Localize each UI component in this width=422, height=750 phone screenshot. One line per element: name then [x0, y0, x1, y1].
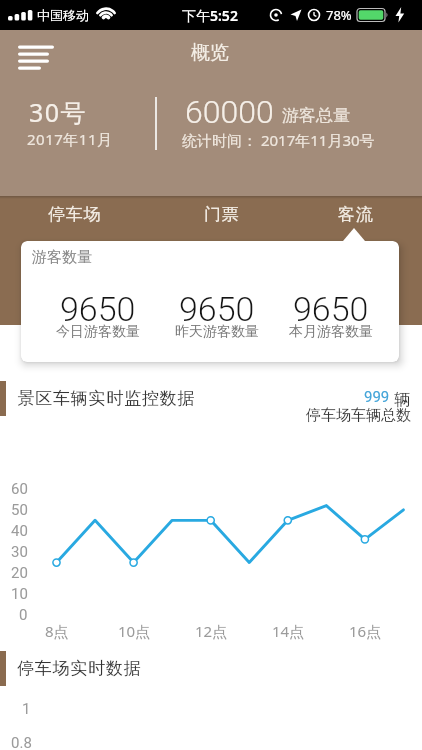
- staticText: 78%: [326, 6, 352, 24]
- staticText: 0: [19, 606, 28, 624]
- button[interactable]: [21, 241, 399, 362]
- staticText: 2017年11月: [27, 129, 113, 149]
- staticText: 9650: [293, 289, 369, 329]
- button[interactable]: 客流: [296, 198, 416, 230]
- staticText: 今日游客数量: [56, 323, 140, 341]
- button[interactable]: [10, 38, 62, 78]
- staticText: 门票: [204, 204, 240, 225]
- staticText: 60000: [185, 93, 274, 131]
- staticText: 9650: [60, 289, 136, 329]
- staticText: 8点: [45, 621, 69, 641]
- staticText: 16点: [349, 621, 382, 641]
- staticText: 客流: [338, 204, 374, 225]
- staticText: 游客总量: [282, 105, 350, 126]
- staticText: 昨天游客数量: [175, 323, 259, 341]
- staticText: 停车场车辆总数: [306, 406, 411, 425]
- staticText: 辆: [390, 388, 411, 408]
- staticText: 9650: [179, 289, 255, 329]
- staticText: 30: [11, 543, 28, 561]
- staticText: 40: [11, 522, 28, 540]
- staticText: 本月游客数量: [289, 323, 373, 341]
- button[interactable]: 停车场: [15, 198, 135, 230]
- staticText: 停车场: [48, 204, 102, 225]
- staticText: 60: [11, 480, 28, 498]
- staticText: 停车场实时数据: [17, 658, 142, 679]
- staticText: 14点: [272, 621, 305, 641]
- staticText: 0.8: [11, 734, 32, 750]
- staticText: 10: [11, 585, 28, 603]
- staticText: 50: [11, 501, 28, 519]
- staticText: 20: [11, 564, 28, 582]
- staticText: 10点: [118, 621, 151, 641]
- staticText: 下午5:52: [182, 6, 238, 25]
- staticText: 1: [22, 700, 31, 718]
- staticText: 30号: [29, 95, 88, 129]
- staticText: 999: [364, 388, 390, 406]
- staticText: 概览: [191, 41, 229, 65]
- staticText: 12点: [195, 621, 228, 641]
- staticText: 中国移动: [37, 7, 89, 23]
- staticText: 景区车辆实时监控数据: [17, 388, 195, 409]
- staticText: 游客数量: [32, 248, 92, 267]
- staticText: 统计时间： 2017年11月30号: [182, 130, 375, 150]
- button[interactable]: 门票: [162, 198, 282, 230]
